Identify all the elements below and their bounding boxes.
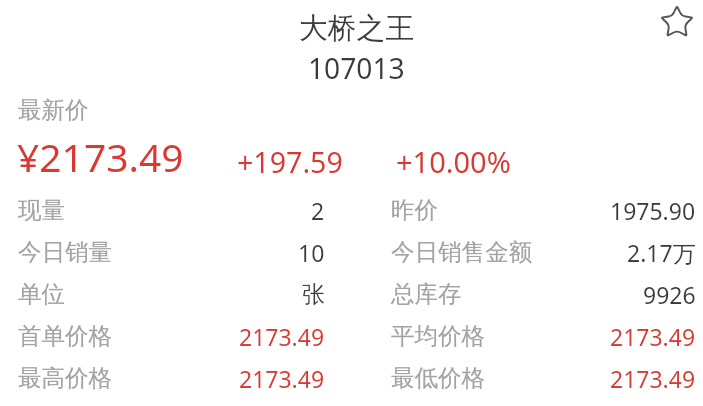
- button[interactable]: 最低价格: [391, 357, 696, 399]
- staticText: 今日销售金额: [391, 237, 532, 267]
- staticText: 现量: [18, 195, 65, 225]
- staticText: 昨价: [391, 195, 438, 225]
- staticText: 9926: [643, 279, 696, 310]
- staticText: 10: [298, 237, 325, 268]
- staticText: 2173.49: [610, 363, 696, 394]
- staticText: 今日销量: [18, 237, 112, 267]
- button[interactable]: Favorite: [660, 5, 694, 39]
- button[interactable]: 今日销售金额: [391, 231, 696, 273]
- staticText: 2: [311, 195, 325, 226]
- staticText: 单位: [18, 279, 65, 309]
- staticText: 1975.90: [610, 195, 696, 226]
- button[interactable]: 今日销量: [18, 231, 325, 273]
- staticText: 总库存: [391, 279, 462, 309]
- staticText: 107013: [308, 49, 405, 87]
- button[interactable]: 首单价格: [18, 315, 325, 357]
- staticText: 最高价格: [18, 363, 112, 393]
- staticText: 首单价格: [18, 321, 112, 351]
- button[interactable]: 最高价格: [18, 357, 325, 399]
- staticText: +10.00%: [396, 142, 511, 181]
- staticText: ¥2173.49: [17, 130, 184, 183]
- staticText: +197.59: [237, 142, 343, 181]
- button[interactable]: 平均价格: [391, 315, 696, 357]
- staticText: 最新价: [18, 95, 89, 125]
- staticText: 最低价格: [391, 363, 485, 393]
- button[interactable]: 单位: [18, 273, 325, 315]
- staticText: 2.17万: [627, 237, 696, 268]
- button[interactable]: 昨价: [391, 189, 696, 231]
- staticText: 2173.49: [239, 321, 325, 352]
- staticText: 2173.49: [239, 363, 325, 394]
- staticText: 平均价格: [391, 321, 485, 351]
- staticText: 大桥之王: [299, 10, 415, 46]
- staticText: 2173.49: [610, 321, 696, 352]
- button[interactable]: 现量: [18, 189, 325, 231]
- button[interactable]: 总库存: [391, 273, 696, 315]
- staticText: 张: [302, 280, 325, 309]
